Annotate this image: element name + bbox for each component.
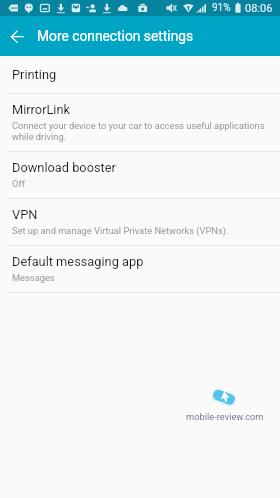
staticText: More connection settings (37, 28, 194, 44)
staticText: Download booster (12, 160, 116, 175)
staticText: VPN (12, 207, 38, 222)
staticText: 91% (212, 2, 231, 14)
button[interactable]: Back (0, 19, 34, 53)
staticText: Default messaging app (12, 254, 144, 269)
staticText: mobile-review.com (186, 411, 264, 422)
staticText: MirrorLink (12, 102, 71, 117)
staticText: Set up and manage Virtual Private Networ… (12, 225, 229, 236)
staticText: Messages (12, 272, 55, 283)
staticText: Printing (12, 67, 57, 82)
button[interactable]: Printing (0, 56, 280, 93)
button[interactable]: Download booster (0, 152, 280, 198)
staticText: Connect your device to your car to acces… (12, 120, 267, 142)
staticText: Off (12, 178, 25, 189)
staticText: 08:06 (245, 2, 273, 15)
button[interactable]: MirrorLink (0, 94, 280, 151)
button[interactable]: Default messaging app (0, 246, 280, 292)
button[interactable]: VPN (0, 199, 280, 245)
